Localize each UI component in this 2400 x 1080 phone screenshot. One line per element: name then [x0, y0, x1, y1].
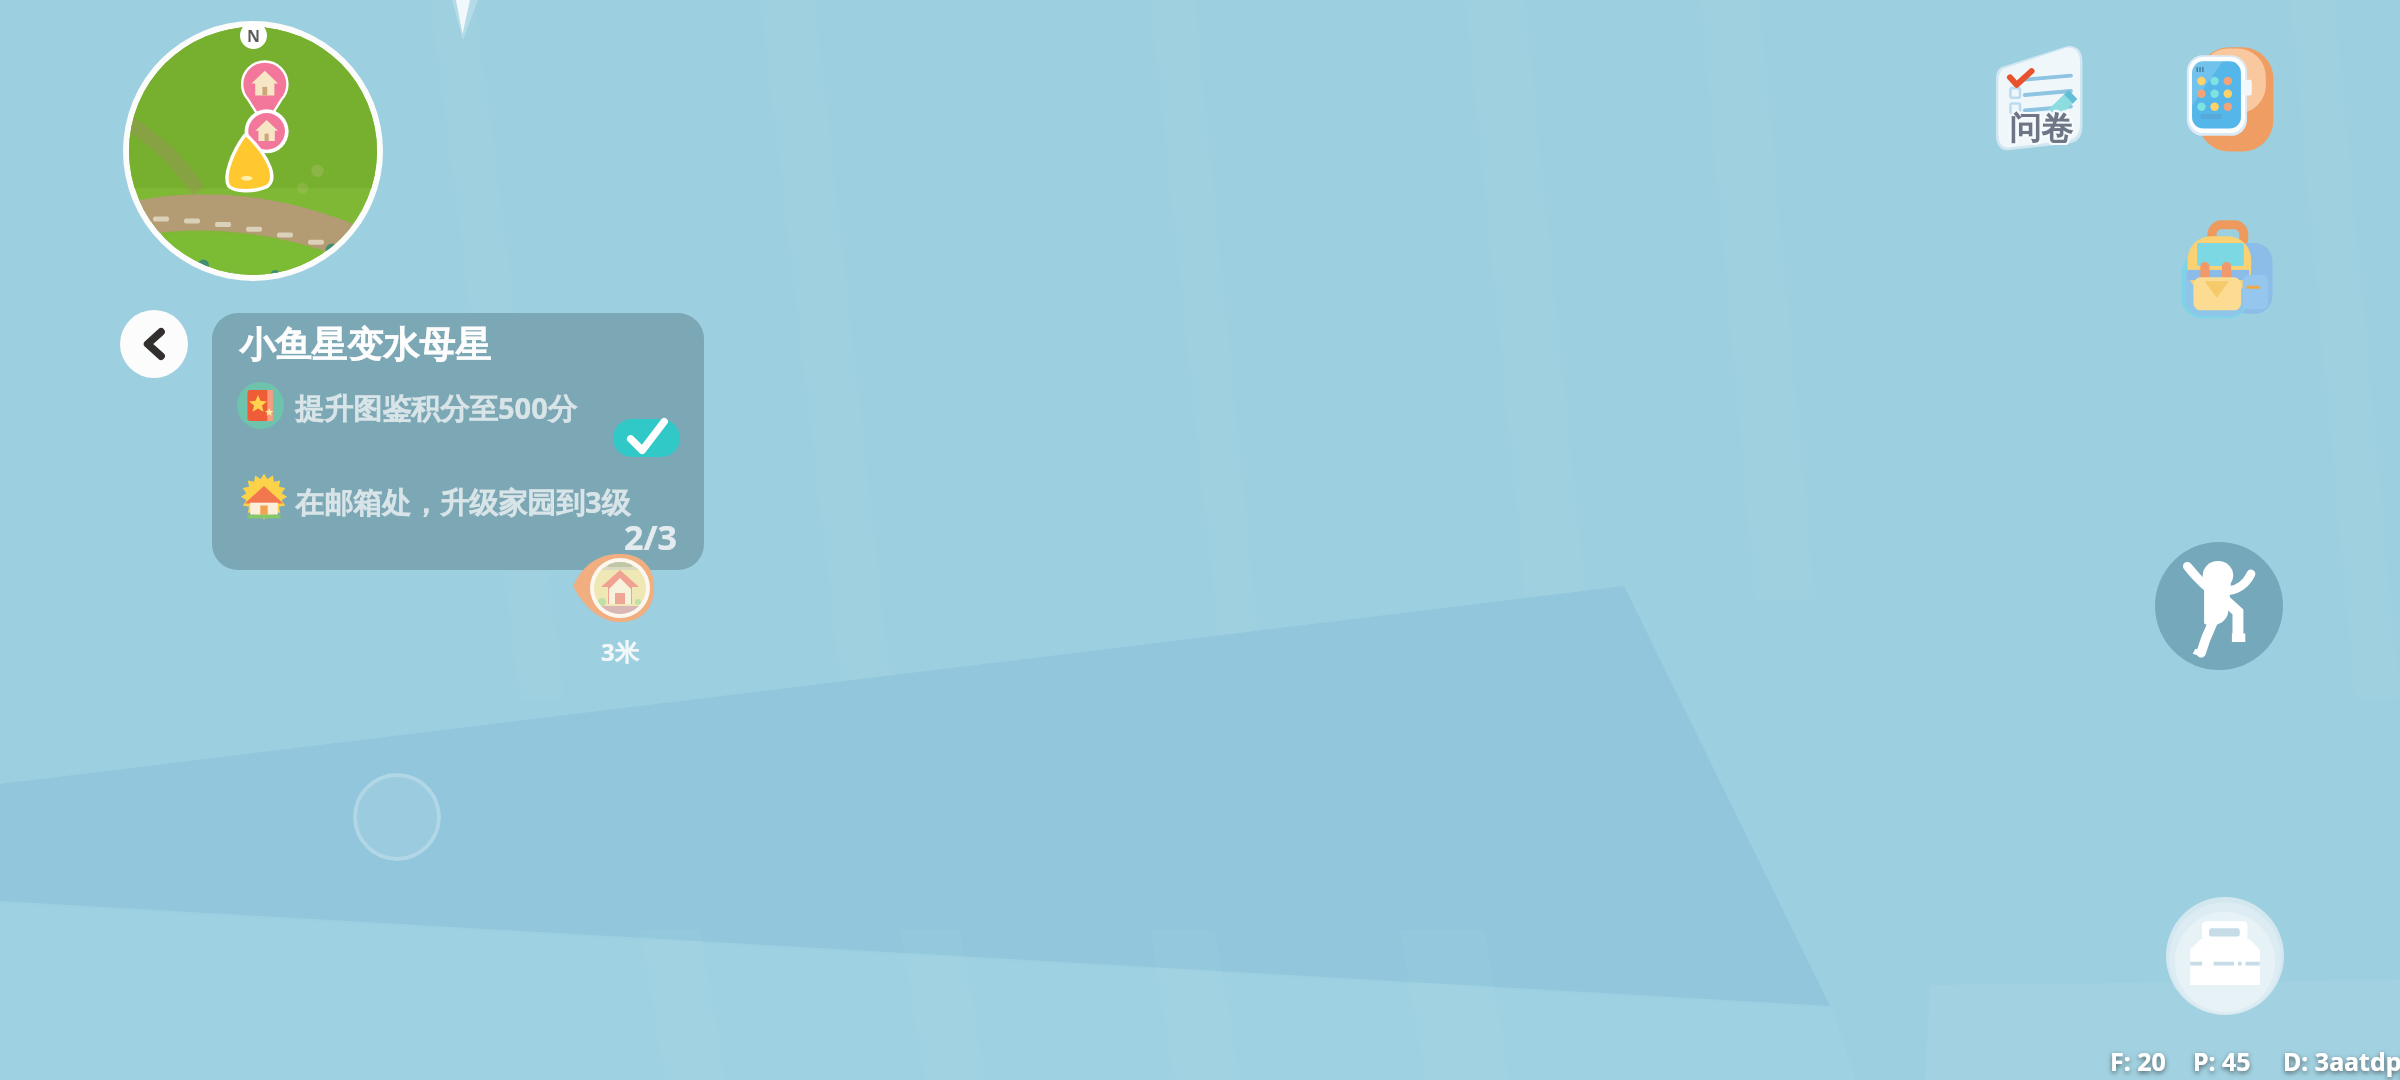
- staticText: 问卷: [2011, 108, 2075, 148]
- staticText: 问卷: [2010, 109, 2074, 149]
- button[interactable]: Smart watch: [2185, 44, 2279, 156]
- staticText: 问卷: [2011, 107, 2075, 147]
- staticText: 问卷: [2010, 108, 2074, 148]
- button[interactable]: 小鱼星变水母星: [212, 313, 704, 570]
- button[interactable]: Backpack: [2177, 218, 2283, 332]
- staticText: 提升图鉴积分至500分: [295, 388, 577, 428]
- button[interactable]: Questionnaire: [1996, 42, 2092, 156]
- button[interactable]: Jump: [2155, 542, 2283, 670]
- staticText: D: 3aatdpj: [2283, 1044, 2400, 1078]
- staticText: 问卷: [2009, 107, 2073, 147]
- button[interactable]: Home waypoint: [565, 550, 675, 665]
- button[interactable]: Mini map: [122, 20, 384, 282]
- staticText: 问卷: [2008, 109, 2072, 149]
- staticText: 在邮箱处，升级家园到3级: [295, 482, 631, 522]
- staticText: 问卷: [2007, 108, 2071, 148]
- staticText: 问卷: [2010, 107, 2074, 147]
- staticText: 问卷: [2009, 108, 2073, 148]
- staticText: 问卷: [2010, 110, 2074, 150]
- button[interactable]: Vehicle: [2166, 897, 2284, 1015]
- staticText: 问卷: [2008, 110, 2072, 150]
- staticText: N: [247, 25, 261, 47]
- staticText: 问卷: [2008, 107, 2072, 147]
- staticText: 2/3: [624, 514, 678, 560]
- staticText: 问卷: [2007, 109, 2071, 149]
- staticText: 3米: [601, 635, 639, 668]
- button[interactable]: Claim reward: [613, 419, 680, 457]
- staticText: F: 20: [2110, 1044, 2166, 1078]
- staticText: P: 45: [2193, 1044, 2251, 1078]
- staticText: 问卷: [2009, 106, 2073, 146]
- button[interactable]: Back: [120, 310, 188, 378]
- staticText: 问卷: [2008, 106, 2072, 146]
- staticText: 问卷: [2008, 108, 2072, 148]
- staticText: 问卷: [2010, 106, 2074, 146]
- staticText: 问卷: [2009, 110, 2073, 150]
- staticText: 小鱼星变水母星: [239, 322, 491, 367]
- staticText: 问卷: [2011, 109, 2075, 149]
- button[interactable]: Joystick: [353, 773, 441, 861]
- staticText: 问卷: [2007, 107, 2071, 147]
- staticText: 问卷: [2009, 109, 2073, 149]
